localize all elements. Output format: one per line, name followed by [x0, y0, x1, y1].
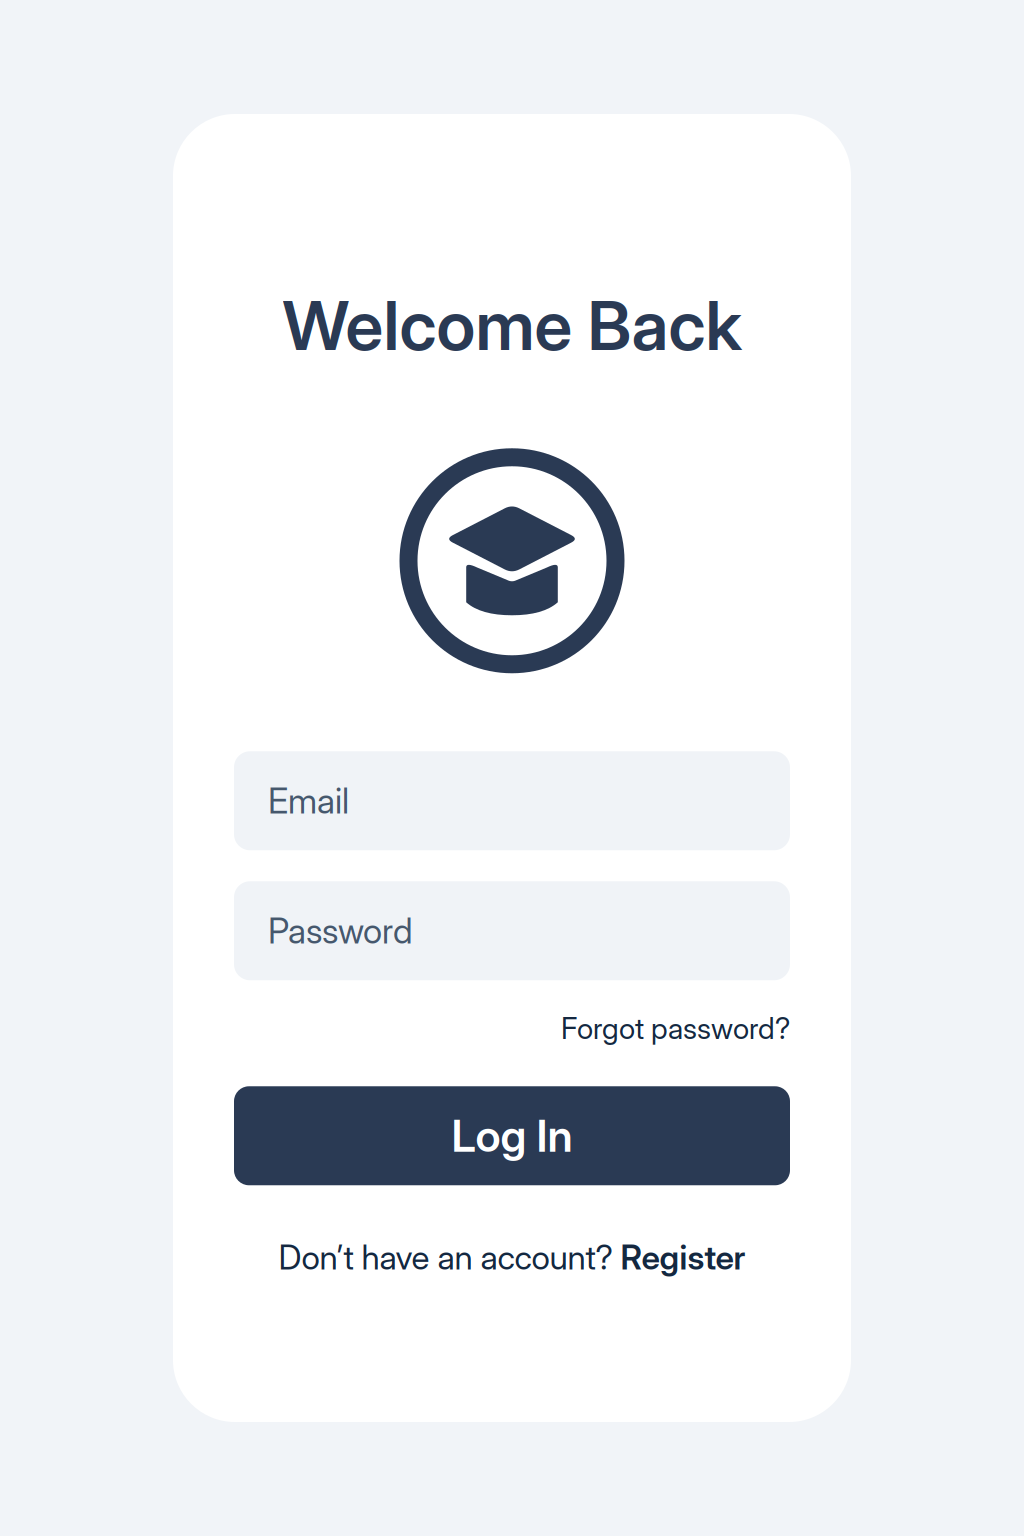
staticText: Password	[268, 910, 413, 952]
button[interactable]: Password	[234, 881, 790, 980]
staticText: Register	[620, 1237, 745, 1278]
staticText: Welcome Back	[282, 284, 741, 366]
button[interactable]: Forgot password?	[234, 1009, 790, 1047]
staticText: Log In	[451, 1109, 572, 1162]
button[interactable]: Email	[234, 751, 790, 850]
button[interactable]: Don’t have an account?	[278, 1237, 745, 1278]
staticText: Email	[268, 780, 349, 822]
button[interactable]: Log In	[234, 1086, 790, 1185]
staticText: Don’t have an account?	[278, 1237, 620, 1278]
staticText: Forgot password?	[561, 1010, 790, 1046]
